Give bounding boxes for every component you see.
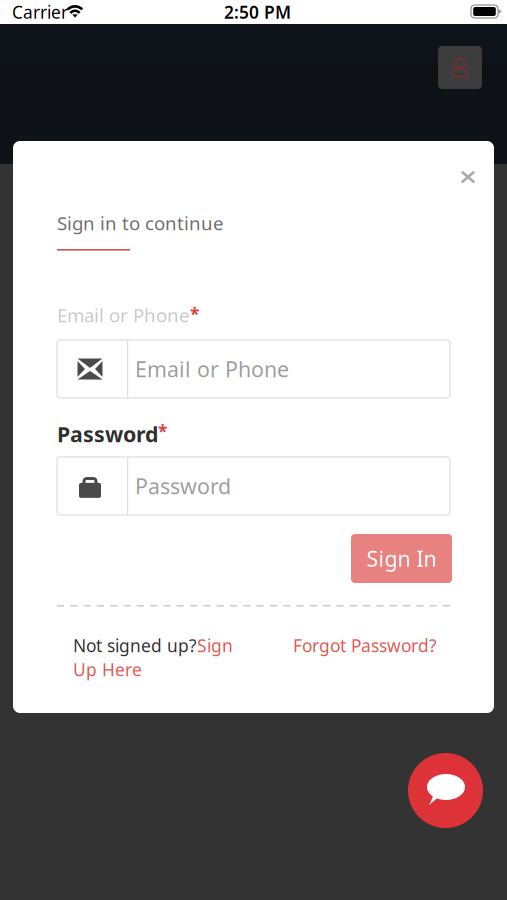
button[interactable]: Close [451,161,485,193]
staticText: 2:50 PM [224,0,291,23]
button[interactable]: Forgot Password? [293,634,437,657]
staticText: Not signed up? [73,634,197,657]
button[interactable]: Sign In [351,534,452,583]
staticText: Email or Phone [57,303,190,327]
staticText: Forgot Password? [293,634,437,657]
button[interactable]: Sign [197,634,233,657]
staticText: * [158,420,167,443]
staticText: Password [57,420,158,448]
staticText: * [190,303,199,326]
staticText: Password [135,472,231,500]
staticText: Email or Phone [135,355,289,383]
button[interactable]: Chat [408,753,483,828]
button[interactable]: Up Here [73,658,142,681]
button[interactable]: Account [438,46,482,89]
staticText: Sign in to continue [57,211,224,235]
staticText: Carrier [12,0,68,23]
staticText: Sign [197,634,233,657]
staticText: Sign In [366,544,436,573]
staticText: Up Here [73,658,142,681]
